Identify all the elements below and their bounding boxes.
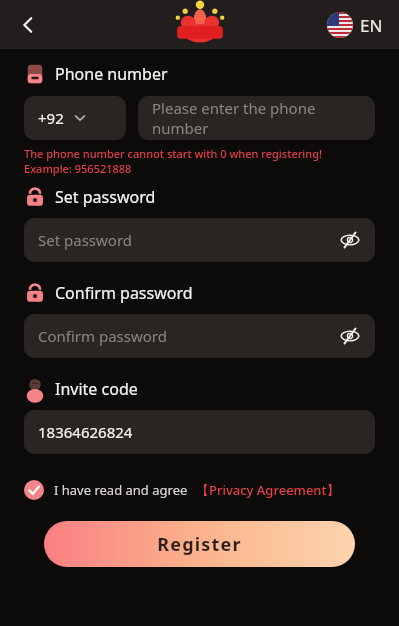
button[interactable]: Set password bbox=[24, 218, 375, 262]
staticText: Invite code bbox=[55, 378, 138, 400]
button[interactable]: 【Privacy Agreement】 bbox=[196, 481, 340, 499]
button[interactable]: Back bbox=[8, 5, 48, 45]
button[interactable]: I have read and agree bbox=[22, 478, 342, 502]
staticText: Set password bbox=[55, 186, 156, 208]
staticText: Confirm password bbox=[38, 326, 167, 346]
button[interactable]: Register bbox=[44, 521, 355, 567]
button[interactable]: Please enter the phone number bbox=[138, 96, 375, 140]
button[interactable]: Show password bbox=[335, 321, 365, 351]
staticText: EN bbox=[360, 14, 383, 37]
button[interactable]: +92 bbox=[24, 96, 126, 140]
button[interactable]: 18364626824 bbox=[24, 410, 375, 454]
staticText: Please enter the phone number bbox=[152, 98, 361, 138]
staticText: 18364626824 bbox=[38, 422, 133, 442]
staticText: Register bbox=[157, 532, 242, 557]
button[interactable]: Confirm password bbox=[24, 314, 375, 358]
button[interactable]: EN bbox=[323, 8, 387, 42]
staticText: Phone number bbox=[55, 63, 168, 85]
button[interactable]: Show password bbox=[335, 225, 365, 255]
staticText: The phone number cannot start with 0 whe… bbox=[24, 146, 323, 161]
staticText: Set password bbox=[38, 230, 133, 250]
staticText: +92 bbox=[38, 108, 64, 128]
staticText: Confirm password bbox=[55, 282, 193, 304]
staticText: Example: 956521888 bbox=[24, 161, 132, 176]
staticText: I have read and agree bbox=[54, 481, 188, 499]
